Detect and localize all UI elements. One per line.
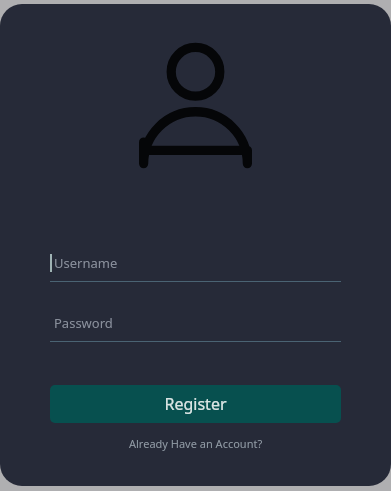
- staticText: Already Have an Account?: [129, 436, 263, 451]
- staticText: Register: [164, 393, 227, 415]
- other: Profile: [139, 41, 252, 155]
- button[interactable]: Already Have an Account?: [125, 433, 267, 454]
- button[interactable]: Register: [50, 385, 341, 423]
- staticText: Password: [54, 314, 113, 332]
- staticText: Username: [54, 254, 118, 272]
- button[interactable]: Username: [50, 244, 341, 282]
- button[interactable]: Password: [50, 304, 341, 342]
